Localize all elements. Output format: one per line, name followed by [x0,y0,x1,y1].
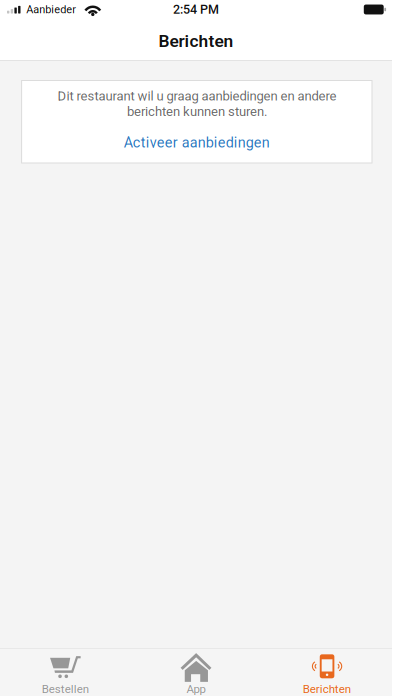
staticText: Dit restaurant wil u graag aanbiedingen … [57,88,336,119]
button[interactable]: Activeer aanbiedingen [22,119,372,163]
staticText: Aanbieder [26,3,76,16]
button[interactable]: Berichten [261,649,392,696]
staticText: Bestellen [42,682,89,696]
staticText: Berichten [158,31,233,51]
button[interactable]: Bestellen [0,649,131,696]
staticText: 2:54 PM [173,2,219,17]
staticText: App [186,682,205,696]
staticText: Activeer aanbiedingen [124,134,270,151]
staticText: Berichten [303,682,351,696]
button[interactable]: App [131,649,261,696]
